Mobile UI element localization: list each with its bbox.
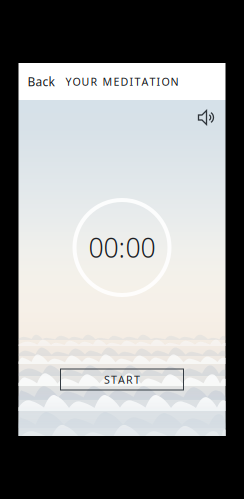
button[interactable]: Back	[18, 65, 65, 97]
button[interactable]: S T A R T	[60, 369, 183, 390]
button[interactable]: Sound	[197, 109, 215, 126]
staticText: S T A R T	[104, 372, 140, 387]
staticText: Y O U R M E D I T A T I O N	[65, 74, 178, 89]
staticText: 00:00	[88, 230, 155, 265]
staticText: Back	[27, 73, 54, 89]
